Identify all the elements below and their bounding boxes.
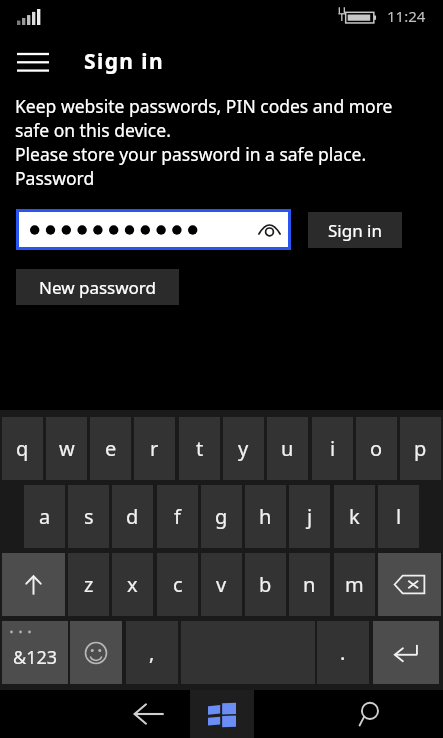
staticText: t xyxy=(196,435,204,462)
staticText: r xyxy=(150,435,159,462)
button[interactable]: j xyxy=(289,485,330,548)
button[interactable]: v xyxy=(201,553,242,616)
button[interactable]: , xyxy=(126,621,178,684)
staticText: p xyxy=(414,435,427,462)
button[interactable]: q xyxy=(2,417,43,480)
button[interactable]: Backspace xyxy=(378,553,441,616)
staticText: l xyxy=(396,503,402,530)
button[interactable]: z xyxy=(68,553,109,616)
button[interactable]: w xyxy=(46,417,87,480)
staticText: v xyxy=(216,571,227,598)
staticText: safe on this device. xyxy=(15,118,171,142)
staticText: u xyxy=(281,435,294,462)
staticText: n xyxy=(303,571,316,598)
button[interactable]: Show password xyxy=(250,212,288,247)
staticText: Please store your password in a safe pla… xyxy=(15,142,367,166)
button[interactable]: x xyxy=(112,553,153,616)
staticText: New password xyxy=(39,276,157,299)
staticText: z xyxy=(84,571,94,598)
button[interactable]: Show password xyxy=(19,212,288,247)
staticText: c xyxy=(173,571,183,598)
button[interactable]: d xyxy=(112,485,153,548)
staticText: m xyxy=(345,571,364,598)
button[interactable]: o xyxy=(356,417,397,480)
staticText: f xyxy=(174,503,181,530)
button[interactable]: f xyxy=(157,485,198,548)
button[interactable]: i xyxy=(312,417,353,480)
button[interactable]: u xyxy=(267,417,308,480)
button[interactable]: r xyxy=(134,417,175,480)
staticText: Keep website passwords, PIN codes and mo… xyxy=(15,94,393,118)
button[interactable]: h xyxy=(245,485,286,548)
staticText: b xyxy=(259,571,272,598)
button[interactable]: t xyxy=(179,417,220,480)
button[interactable]: y xyxy=(223,417,264,480)
staticText: e xyxy=(105,435,117,462)
button[interactable]: s xyxy=(68,485,109,548)
button[interactable]: k xyxy=(334,485,375,548)
staticText: i xyxy=(330,435,336,462)
staticText: Sign in xyxy=(328,219,382,242)
button[interactable]: Search xyxy=(330,690,412,738)
staticText: Sign in xyxy=(84,47,164,76)
staticText: s xyxy=(84,503,94,530)
staticText: j xyxy=(307,503,313,530)
staticText: q xyxy=(16,435,29,462)
staticText: , xyxy=(149,639,155,666)
staticText: g xyxy=(215,503,228,530)
staticText: . xyxy=(340,639,346,666)
staticText: 11:24 xyxy=(387,6,426,26)
button[interactable]: c xyxy=(157,553,198,616)
staticText: Password xyxy=(15,166,95,190)
button[interactable]: g xyxy=(201,485,242,548)
button[interactable]: Symbols xyxy=(2,621,68,684)
button[interactable]: Enter xyxy=(373,621,439,684)
button[interactable]: e xyxy=(90,417,131,480)
button[interactable]: Sign in xyxy=(308,212,402,248)
button[interactable]: . xyxy=(317,621,369,684)
button[interactable]: a xyxy=(24,485,65,548)
button[interactable]: n xyxy=(289,553,330,616)
staticText: d xyxy=(126,503,139,530)
staticText: x xyxy=(127,571,138,598)
button[interactable]: Emoji xyxy=(70,621,122,684)
staticText: o xyxy=(370,435,383,462)
button[interactable]: Shift xyxy=(2,553,65,616)
staticText: a xyxy=(39,503,51,530)
button[interactable]: Menu xyxy=(8,43,58,79)
button[interactable]: m xyxy=(334,553,375,616)
button[interactable]: Back xyxy=(108,690,190,738)
button[interactable]: l xyxy=(378,485,419,548)
staticText: k xyxy=(349,503,360,530)
button[interactable]: p xyxy=(400,417,441,480)
staticText: y xyxy=(238,435,249,462)
staticText: w xyxy=(59,435,75,462)
button[interactable]: b xyxy=(245,553,286,616)
staticText: &123 xyxy=(13,645,58,670)
button[interactable]: New password xyxy=(16,269,179,305)
staticText: h xyxy=(259,503,272,530)
button[interactable]: Start xyxy=(190,690,254,738)
